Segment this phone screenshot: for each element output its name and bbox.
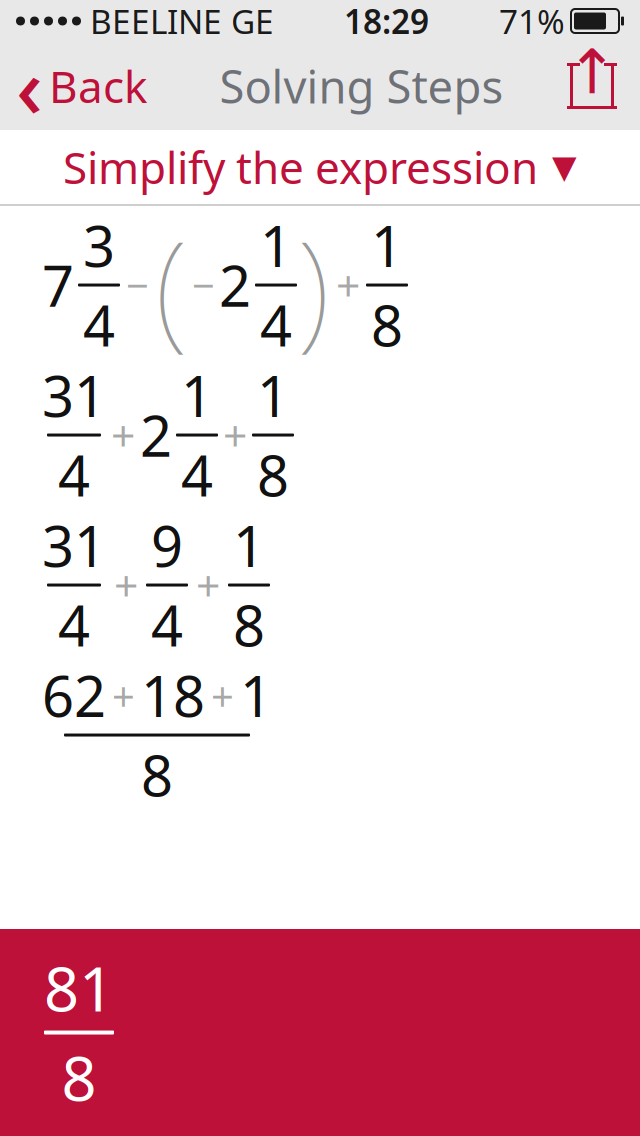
- staticText: 9: [151, 508, 183, 582]
- staticText: 1: [257, 358, 289, 432]
- staticText: 31: [42, 358, 106, 432]
- staticText: 8: [61, 1036, 96, 1118]
- staticText: Solving Steps: [219, 56, 503, 116]
- staticText: 3: [83, 208, 115, 282]
- staticText: 2: [140, 398, 172, 472]
- staticText: 1: [260, 208, 292, 282]
- staticText: 1: [240, 658, 272, 732]
- staticText: ↑: [566, 37, 617, 107]
- staticText: 4: [83, 287, 115, 362]
- staticText: ): [297, 200, 330, 370]
- staticText: 4: [260, 287, 292, 362]
- staticText: Simplify the expression: [63, 138, 538, 196]
- staticText: 18:29: [344, 0, 429, 43]
- staticText: 31: [42, 508, 106, 582]
- staticText: 62: [42, 658, 106, 732]
- staticText: 1: [371, 208, 403, 282]
- staticText: 8: [233, 587, 265, 662]
- button[interactable]: Share: [566, 42, 640, 130]
- staticText: −: [192, 258, 215, 311]
- staticText: +: [112, 669, 135, 722]
- staticText: 18: [141, 658, 205, 732]
- staticText: 1: [233, 508, 265, 582]
- staticText: 4: [58, 587, 90, 662]
- staticText: ‹: [16, 31, 43, 141]
- staticText: +: [111, 407, 135, 463]
- staticText: 8: [257, 437, 289, 512]
- staticText: +: [336, 257, 360, 313]
- staticText: ▼: [552, 149, 577, 185]
- staticText: −: [126, 258, 149, 311]
- button[interactable]: Simplify the expression: [0, 130, 640, 204]
- staticText: 8: [141, 737, 173, 812]
- staticText: 8: [371, 287, 403, 362]
- staticText: +: [223, 407, 247, 463]
- staticText: 4: [151, 587, 183, 662]
- staticText: 1: [181, 358, 213, 432]
- staticText: BEELINE GE: [81, 0, 274, 43]
- staticText: 2: [219, 248, 251, 322]
- staticText: (: [155, 200, 188, 370]
- staticText: +: [196, 557, 220, 613]
- staticText: 4: [58, 437, 90, 512]
- staticText: 4: [181, 437, 213, 512]
- staticText: 7: [42, 248, 74, 322]
- staticText: 71%: [499, 0, 565, 43]
- staticText: +: [114, 557, 138, 613]
- staticText: +: [211, 669, 234, 722]
- staticText: Back: [49, 57, 147, 115]
- staticText: 81: [44, 947, 114, 1028]
- button[interactable]: ‹: [0, 42, 157, 130]
